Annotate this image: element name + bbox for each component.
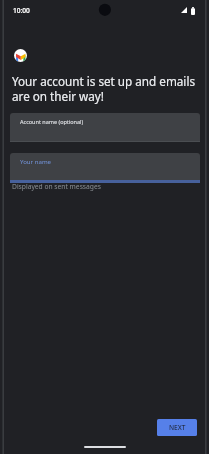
staticText: Your account is set up and emails are on… (12, 73, 200, 104)
other: Mobile signal (181, 7, 187, 13)
button[interactable]: Account name (optional) (10, 113, 200, 142)
button[interactable]: Your name (10, 153, 200, 180)
staticText: 10:00 (13, 6, 30, 15)
button[interactable]: NEXT (157, 419, 197, 436)
staticText: Your name (20, 157, 52, 165)
staticText: Displayed on sent messages (12, 182, 101, 191)
staticText: Account name (optional) (20, 118, 84, 125)
staticText: NEXT (169, 423, 186, 432)
other: Battery (191, 7, 195, 15)
